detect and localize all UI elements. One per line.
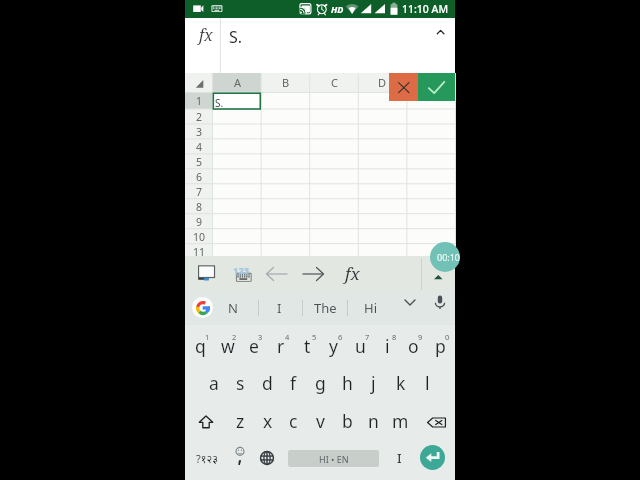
button[interactable]: N <box>213 291 253 325</box>
staticText: k <box>396 371 406 395</box>
staticText: 7 <box>365 332 370 342</box>
button[interactable]: D <box>358 73 407 92</box>
button[interactable]: g <box>307 366 334 400</box>
button[interactable]: i <box>374 328 401 364</box>
staticText: fx <box>345 262 360 285</box>
button[interactable]: e <box>240 328 267 364</box>
staticText: 5 <box>312 332 317 342</box>
staticText: i <box>385 334 390 358</box>
button[interactable]: m <box>387 404 414 438</box>
button[interactable]: z <box>227 404 254 438</box>
button[interactable]: q <box>187 328 214 364</box>
button[interactable]: Recording timer <box>430 242 460 272</box>
button[interactable]: fx <box>185 18 455 73</box>
staticText: E <box>428 75 435 90</box>
button[interactable]: t <box>294 328 321 364</box>
staticText: g <box>315 371 326 395</box>
staticText: Hi <box>364 299 377 317</box>
button[interactable]: 7 <box>185 184 213 199</box>
button[interactable]: 10 <box>185 229 213 244</box>
button[interactable]: d <box>254 366 281 400</box>
button[interactable]: n <box>360 404 387 438</box>
staticText: 1 <box>205 332 210 342</box>
staticText: s <box>236 371 245 395</box>
staticText: 5 <box>196 155 203 169</box>
button[interactable]: Confirm <box>418 73 455 101</box>
button[interactable]: l <box>414 366 441 400</box>
button[interactable]: 6 <box>185 169 213 184</box>
button[interactable]: j <box>360 366 387 400</box>
button[interactable]: y <box>320 328 347 364</box>
staticText: z <box>236 409 245 433</box>
button[interactable]: Next cell <box>298 256 328 291</box>
button[interactable]: f <box>280 366 307 400</box>
button[interactable]: p <box>427 328 454 364</box>
button[interactable]: r <box>267 328 294 364</box>
button[interactable]: Expand <box>430 256 447 291</box>
button[interactable]: C <box>310 73 359 92</box>
button[interactable]: b <box>334 404 361 438</box>
staticText: 6 <box>338 332 343 342</box>
button[interactable]: B <box>261 73 310 92</box>
button[interactable]: Emoji and comma <box>227 441 252 475</box>
button[interactable]: Cancel <box>389 73 418 101</box>
staticText: n <box>368 409 379 433</box>
button[interactable]: I <box>259 291 299 325</box>
button[interactable]: 4 <box>185 139 213 154</box>
button[interactable]: ?१२३ <box>186 441 227 475</box>
staticText: N <box>228 299 238 317</box>
button[interactable]: h <box>334 366 361 400</box>
button[interactable]: Change language <box>254 441 279 475</box>
staticText: B <box>282 75 290 90</box>
button[interactable]: 9 <box>185 214 213 229</box>
button[interactable]: o <box>400 328 427 364</box>
button[interactable]: a <box>200 366 227 400</box>
button[interactable]: 3 <box>185 124 213 139</box>
button[interactable]: The <box>305 291 345 325</box>
button[interactable]: Toggle view <box>193 256 219 291</box>
staticText: r <box>277 334 285 358</box>
staticText: l <box>425 371 430 395</box>
button[interactable]: v <box>307 404 334 438</box>
button[interactable]: Number keypad <box>229 256 255 291</box>
button[interactable]: Hi <box>350 291 390 325</box>
button[interactable]: x <box>254 404 281 438</box>
staticText: I <box>397 449 402 467</box>
staticText: h <box>342 371 353 395</box>
button[interactable]: k <box>387 366 414 400</box>
button[interactable]: fx <box>337 256 367 291</box>
staticText: x <box>263 409 273 433</box>
staticText: 2 <box>196 110 203 124</box>
button[interactable]: Backspace <box>418 404 454 440</box>
button[interactable]: 11 <box>185 244 213 259</box>
staticText: 4 <box>196 140 203 154</box>
button[interactable]: c <box>280 404 307 438</box>
button[interactable]: 5 <box>185 154 213 169</box>
button[interactable]: A <box>213 73 262 92</box>
staticText: b <box>342 409 353 433</box>
button[interactable]: 2 <box>185 109 213 124</box>
staticText: p <box>435 334 446 358</box>
staticText: S. <box>215 96 224 110</box>
button[interactable]: Collapse formula bar <box>428 20 452 44</box>
button[interactable]: Previous cell <box>262 256 292 291</box>
button[interactable]: Google <box>192 297 213 318</box>
staticText: 4 <box>285 332 290 342</box>
staticText: 123 <box>233 264 250 277</box>
button[interactable]: 1 <box>185 92 213 109</box>
button[interactable]: E <box>407 73 456 92</box>
button[interactable]: w <box>214 328 241 364</box>
staticText: m <box>392 409 409 433</box>
staticText: I <box>277 299 282 317</box>
button[interactable]: 8 <box>185 199 213 214</box>
button[interactable]: Enter <box>420 445 445 470</box>
staticText: 8 <box>392 332 397 342</box>
button[interactable]: Voice input <box>429 291 451 313</box>
button[interactable]: More suggestions <box>399 291 421 313</box>
button[interactable]: s <box>227 366 254 400</box>
staticText: d <box>262 371 273 395</box>
button[interactable]: Shift <box>186 404 225 440</box>
button[interactable]: HI • EN <box>288 450 379 467</box>
button[interactable]: I <box>387 441 412 475</box>
button[interactable]: u <box>347 328 374 364</box>
